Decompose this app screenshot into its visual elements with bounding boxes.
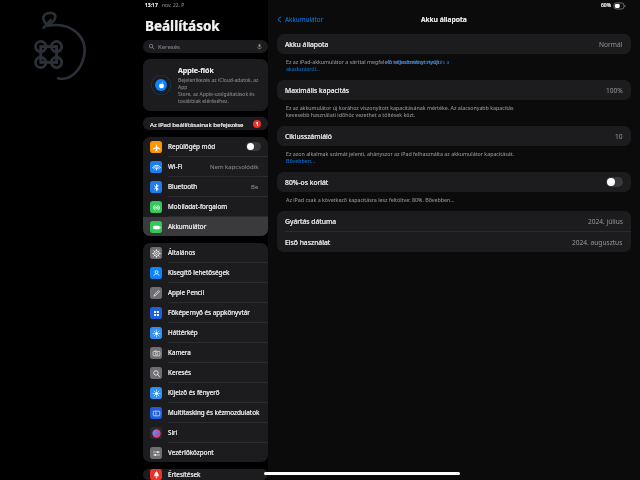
staticText: Akkumulátor	[285, 15, 324, 24]
staticText: Maximális kapacitás	[285, 86, 606, 95]
staticText: Beállítások	[145, 17, 220, 35]
button[interactable]: Keresés	[143, 40, 268, 53]
button[interactable]: Általános	[143, 243, 268, 262]
button[interactable]: Repülőgép mód kapcsoló	[246, 142, 261, 151]
staticText: Akkumulátor	[168, 222, 261, 231]
staticText: 1	[256, 121, 259, 127]
staticText: Be	[251, 183, 259, 191]
staticText: Értesítések	[168, 470, 261, 479]
button[interactable]: Multitasking és kézmozdulatok	[143, 403, 268, 422]
staticText: Vezérlőközpont	[168, 448, 261, 457]
button[interactable]: 80%-os korlát kapcsoló	[606, 177, 623, 187]
button[interactable]: Apple Pencil	[143, 283, 268, 302]
staticText: Repülőgép mód	[168, 142, 246, 151]
staticText: Akku állapota	[285, 40, 599, 49]
staticText: nov. 22. P	[162, 2, 185, 9]
staticText: Gyártás dátuma	[285, 217, 588, 226]
staticText: Az akkumulátorokról és a akadozásról…	[286, 58, 450, 72]
staticText: 10	[615, 132, 623, 141]
button[interactable]: Siri	[143, 423, 268, 442]
button[interactable]: Maximális kapacitás	[277, 80, 631, 100]
button[interactable]: Gyártás dátuma	[277, 211, 631, 231]
button[interactable]: Bluetooth	[143, 177, 268, 196]
button[interactable]: Főképernyő és appkönyvtár	[143, 303, 268, 322]
staticText: Siri	[168, 428, 261, 437]
staticText: 2024. július	[588, 217, 623, 226]
button[interactable]: Kisegítő lehetőségek	[143, 263, 268, 282]
staticText: Ez az iPad-akkumulátor a várttal megfele…	[286, 58, 443, 65]
staticText: Keresés	[168, 368, 261, 377]
staticText: Általános	[168, 248, 261, 257]
button[interactable]: Apple-fiók	[143, 59, 268, 111]
button[interactable]: Háttérkép	[143, 323, 268, 342]
staticText: Wi-Fi	[168, 162, 210, 171]
staticText: 2024. augusztus	[572, 238, 623, 247]
staticText: Az iPad beállításainak befejezése	[150, 120, 253, 128]
staticText: Multitasking és kézmozdulatok	[168, 408, 261, 417]
staticText: Főképernyő és appkönyvtár	[168, 308, 261, 317]
staticText: Apple-fiók	[178, 65, 214, 75]
staticText: Ez azon alkalmak számát jelenti, ahánysz…	[286, 150, 515, 157]
staticText: Apple Pencil	[168, 288, 261, 297]
staticText: Kisegítő lehetőségek	[168, 268, 261, 277]
button[interactable]: Első használat	[277, 232, 631, 252]
staticText: Ciklusszámláló	[285, 132, 615, 141]
button[interactable]: Wi-Fi	[143, 157, 268, 176]
button[interactable]: Keresés	[143, 363, 268, 382]
button[interactable]: Kamera	[143, 343, 268, 362]
staticText: Akku állapota	[421, 15, 467, 24]
staticText: Normál	[599, 40, 623, 49]
button[interactable]: Mobiladat-forgalom	[143, 197, 268, 216]
staticText: 100%	[606, 86, 623, 95]
button[interactable]: Ciklusszámláló	[277, 126, 631, 146]
staticText: 60%	[601, 2, 611, 9]
staticText: Ez az akkumulátor új korához viszonyítot…	[286, 104, 514, 118]
staticText: Mobiladat-forgalom	[168, 202, 261, 211]
staticText: Nem kapcsolódik	[210, 163, 259, 171]
button[interactable]: Az iPad beállításainak befejezése	[143, 117, 268, 130]
staticText: Az iPad csak a következő kapacitásra les…	[286, 196, 455, 203]
button[interactable]: Vezérlőközpont	[143, 443, 268, 462]
staticText: Keresés	[158, 43, 256, 51]
staticText: Első használat	[285, 238, 572, 247]
staticText: Háttérkép	[168, 328, 261, 337]
button[interactable]: Kijelző és fényerő	[143, 383, 268, 402]
staticText: 80%-os korlát	[285, 178, 606, 187]
staticText: 13:17	[145, 2, 158, 9]
button[interactable]: Repülőgép mód	[143, 137, 268, 156]
button[interactable]: 80%-os korlát	[277, 172, 631, 192]
button[interactable]: Akkumulátor	[268, 13, 330, 26]
staticText: Kamera	[168, 348, 261, 357]
staticText: Bővebben…	[286, 157, 316, 164]
button[interactable]: Akkumulátor	[143, 217, 268, 236]
button[interactable]: Akku állapota	[277, 34, 631, 54]
staticText: Kijelző és fényerő	[168, 388, 261, 397]
staticText: Bejelentkezés az iCloud-adatok, az App S…	[178, 77, 261, 105]
staticText: Bluetooth	[168, 182, 251, 191]
button[interactable]: Értesítések	[143, 469, 268, 480]
